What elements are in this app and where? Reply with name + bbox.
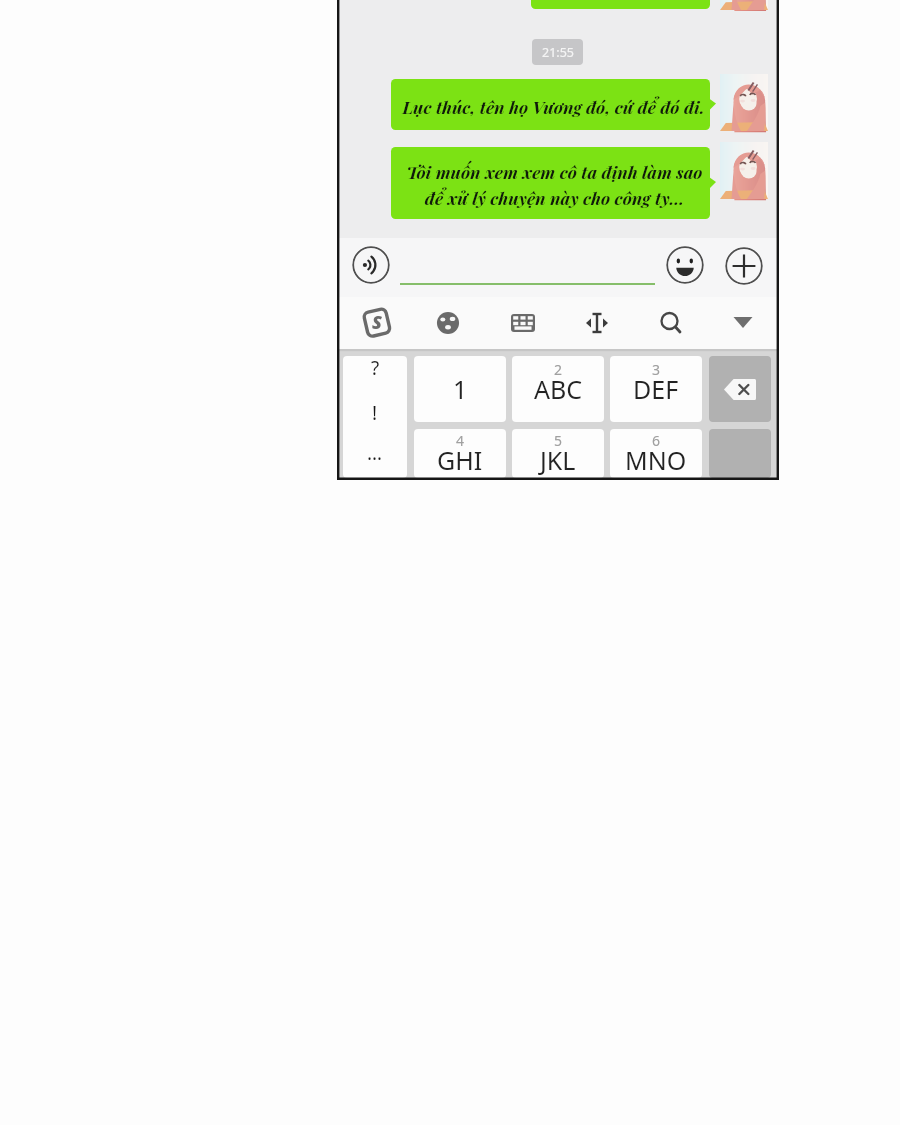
button[interactable]: Hide keyboard: [726, 305, 760, 339]
staticText: ABC: [534, 372, 583, 406]
button[interactable]: Move cursor: [580, 306, 614, 340]
staticText: Lục thúc, tên họ Vương đó, cứ để đó đi.: [402, 95, 705, 118]
staticText: !: [372, 400, 378, 426]
button[interactable]: 1: [414, 356, 506, 422]
button[interactable]: Sogou keyboard: [360, 306, 394, 340]
staticText: JKL: [540, 443, 576, 477]
staticText: 4: [456, 431, 465, 450]
staticText: S: [372, 310, 382, 335]
staticText: DEF: [633, 372, 679, 406]
button[interactable]: 4: [414, 429, 506, 478]
staticText: Tôi muốn xem xem cô ta định làm sao để x…: [406, 160, 703, 209]
staticText: 3: [652, 360, 661, 379]
button[interactable]: 5: [512, 429, 604, 478]
button[interactable]: Tôi muốn xem xem cô ta định làm sao để x…: [391, 147, 716, 219]
button[interactable]: 2: [512, 356, 604, 422]
staticText: 2: [554, 360, 563, 379]
button[interactable]: Switch keyboard: [506, 306, 540, 340]
button[interactable]: 6: [610, 429, 702, 478]
staticText: ?: [371, 356, 380, 381]
button[interactable]: Emoji panel: [431, 306, 465, 340]
staticText: 21:55: [542, 44, 574, 61]
staticText: MNO: [625, 443, 687, 477]
staticText: 1: [453, 372, 468, 406]
button[interactable]: ?: [343, 356, 407, 478]
button[interactable]: Emoji: [666, 246, 704, 284]
button[interactable]: Contact avatar: [720, 0, 768, 10]
staticText: …: [367, 440, 383, 466]
staticText: 5: [554, 431, 563, 450]
button[interactable]: Search: [653, 305, 687, 339]
button[interactable]: Backspace: [709, 356, 771, 422]
staticText: GHI: [437, 443, 483, 477]
button[interactable]: Add attachment: [725, 247, 763, 285]
button[interactable]: Voice input: [352, 246, 390, 284]
button[interactable]: Contact avatar: [720, 74, 768, 131]
button[interactable]: Contact avatar: [720, 142, 768, 199]
button[interactable]: Lục thúc, tên họ Vương đó, cứ để đó đi.: [391, 79, 716, 130]
staticText: 6: [652, 431, 661, 450]
button[interactable]: Shift: [709, 429, 771, 478]
button[interactable]: 3: [610, 356, 702, 422]
